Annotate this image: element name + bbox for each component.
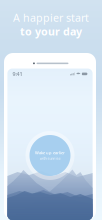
staticText: with sunrise xyxy=(39,156,60,161)
staticText: Wake up earlier xyxy=(35,150,65,155)
staticText: 9:41 xyxy=(12,70,22,77)
button[interactable]: Wake up earlier xyxy=(25,131,74,180)
staticText: A happier start xyxy=(13,10,89,25)
staticText: to your day xyxy=(20,24,82,38)
